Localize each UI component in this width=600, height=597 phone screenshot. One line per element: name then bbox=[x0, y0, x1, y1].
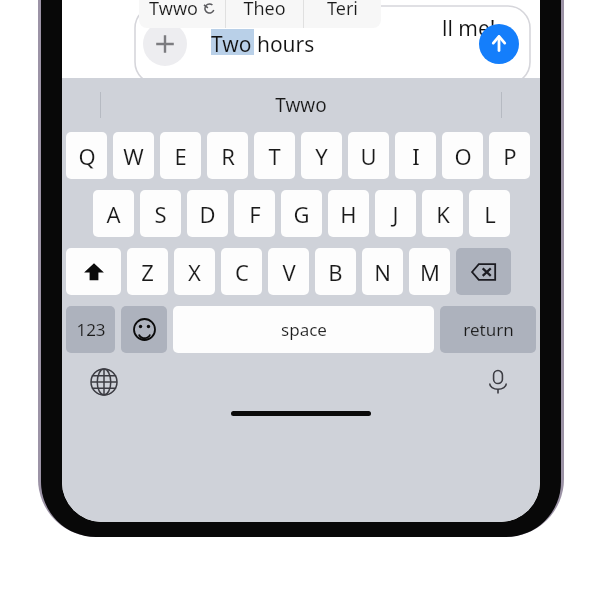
staticText: K bbox=[436, 199, 450, 229]
staticText: E bbox=[174, 141, 187, 171]
staticText: Twwo bbox=[149, 0, 198, 21]
staticText: H bbox=[340, 199, 357, 229]
button[interactable]: S bbox=[140, 190, 181, 237]
button[interactable]: X bbox=[174, 248, 215, 295]
staticText: B bbox=[328, 257, 343, 287]
button[interactable]: Emoji bbox=[121, 306, 167, 353]
button[interactable]: Twwo bbox=[275, 92, 327, 118]
staticText: N bbox=[374, 257, 391, 287]
button[interactable]: I bbox=[395, 132, 436, 179]
staticText: X bbox=[188, 257, 201, 287]
staticText: ll me! bbox=[442, 14, 496, 43]
button[interactable]: F bbox=[234, 190, 275, 237]
button[interactable]: R bbox=[207, 132, 248, 179]
button[interactable]: Backspace bbox=[456, 248, 511, 295]
staticText: Twwo bbox=[275, 92, 327, 118]
button[interactable]: T bbox=[254, 132, 295, 179]
button[interactable]: Z bbox=[127, 248, 168, 295]
staticText: Y bbox=[315, 141, 328, 171]
button[interactable]: Add attachment bbox=[143, 22, 187, 66]
button[interactable]: D bbox=[187, 190, 228, 237]
button[interactable]: 123 bbox=[66, 306, 115, 353]
staticText: C bbox=[235, 257, 249, 287]
button[interactable]: return bbox=[440, 306, 536, 353]
staticText: R bbox=[221, 141, 235, 171]
button[interactable]: Theo bbox=[226, 0, 303, 28]
staticText: T bbox=[268, 141, 281, 171]
staticText: Teri bbox=[327, 0, 358, 21]
button[interactable]: W bbox=[113, 132, 154, 179]
button[interactable] bbox=[135, 6, 530, 84]
button[interactable]: L bbox=[469, 190, 510, 237]
button[interactable]: N bbox=[362, 248, 403, 295]
button[interactable]: space bbox=[173, 306, 434, 353]
staticText: F bbox=[249, 199, 261, 229]
staticText: 7/11/23 已讀 bbox=[428, 14, 505, 32]
staticText: G bbox=[293, 199, 310, 229]
button[interactable]: K bbox=[422, 190, 463, 237]
staticText: O bbox=[454, 141, 472, 171]
button[interactable]: Send bbox=[479, 24, 519, 64]
button[interactable]: P bbox=[489, 132, 530, 179]
button[interactable]: V bbox=[268, 248, 309, 295]
staticText: M bbox=[420, 257, 440, 287]
button[interactable]: U bbox=[348, 132, 389, 179]
staticText: Z bbox=[141, 257, 154, 287]
staticText: Two hours bbox=[211, 30, 315, 59]
staticText: L bbox=[484, 199, 496, 229]
staticText: return bbox=[463, 318, 514, 341]
button[interactable]: Teri bbox=[304, 0, 381, 28]
button[interactable]: B bbox=[315, 248, 356, 295]
staticText: U bbox=[360, 141, 377, 171]
button[interactable]: A bbox=[93, 190, 134, 237]
staticText: Q bbox=[78, 141, 96, 171]
staticText: I bbox=[412, 141, 420, 171]
button[interactable]: G bbox=[281, 190, 322, 237]
button[interactable]: E bbox=[160, 132, 201, 179]
staticText: Theo bbox=[243, 0, 286, 21]
staticText: S bbox=[154, 199, 167, 229]
staticText: D bbox=[199, 199, 216, 229]
button[interactable]: Dictation bbox=[478, 362, 518, 402]
staticText: 123 bbox=[76, 318, 106, 341]
button[interactable]: C bbox=[221, 248, 262, 295]
button[interactable]: O bbox=[442, 132, 483, 179]
button[interactable]: Change keyboard bbox=[84, 362, 124, 402]
button[interactable]: M bbox=[409, 248, 450, 295]
staticText: A bbox=[106, 199, 121, 229]
staticText: V bbox=[282, 257, 296, 287]
staticText: J bbox=[392, 199, 399, 229]
button[interactable]: Y bbox=[301, 132, 342, 179]
button[interactable]: Q bbox=[66, 132, 107, 179]
staticText: P bbox=[503, 141, 517, 171]
button[interactable]: Shift bbox=[66, 248, 121, 295]
button[interactable]: H bbox=[328, 190, 369, 237]
button[interactable]: J bbox=[375, 190, 416, 237]
button[interactable]: Twwo bbox=[139, 0, 225, 28]
staticText: space bbox=[281, 318, 327, 341]
staticText: W bbox=[123, 141, 144, 171]
